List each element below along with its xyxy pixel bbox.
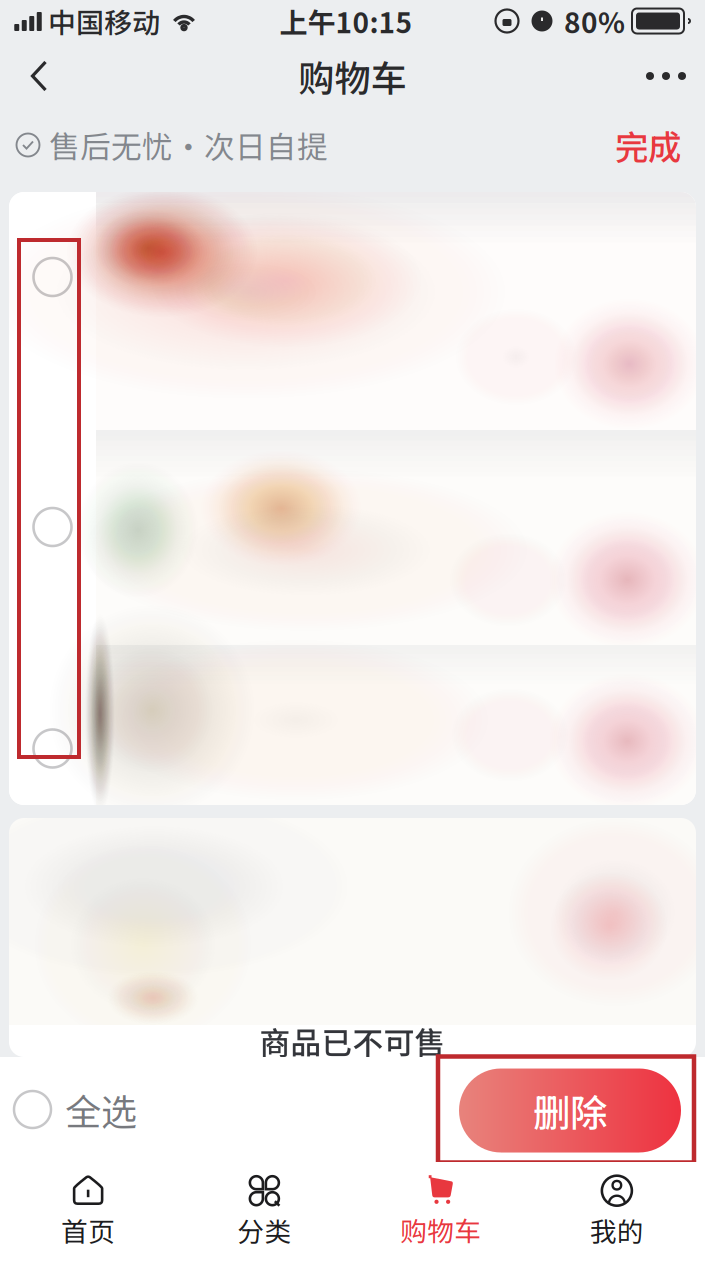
staticText: 完成 [615,121,681,169]
button[interactable]: 完成 [611,113,685,177]
staticText: 商品已不可售 [259,1019,445,1063]
button[interactable]: 删除 [438,1056,694,1162]
button[interactable]: 我的 [529,1162,705,1262]
staticText: 中国移动 [48,1,160,41]
button[interactable]: 选择第一件商品 [9,192,96,362]
staticText: 删除 [533,1083,607,1138]
staticText: 上午10:15 [279,1,412,41]
staticText: 购物车 [298,50,406,102]
button[interactable]: 首页 [0,1162,176,1262]
button[interactable]: 返回 [8,45,70,107]
staticText: 购物车 [400,1210,481,1249]
button[interactable]: 选择第三件商品 [9,692,96,805]
staticText: 首页 [61,1211,115,1249]
staticText: 分类 [237,1211,291,1249]
button[interactable]: 选择第二件商品 [9,362,96,692]
staticText: 80% [564,1,625,41]
staticText: 我的 [590,1211,644,1249]
button[interactable]: 分类 [176,1162,352,1262]
button[interactable]: 更多 [635,45,697,107]
button[interactable]: 全选 [0,1057,157,1162]
button[interactable]: 购物车 [352,1162,529,1262]
staticText: 售后无忧·次日自提 [49,123,328,167]
staticText: 全选 [65,1083,137,1135]
